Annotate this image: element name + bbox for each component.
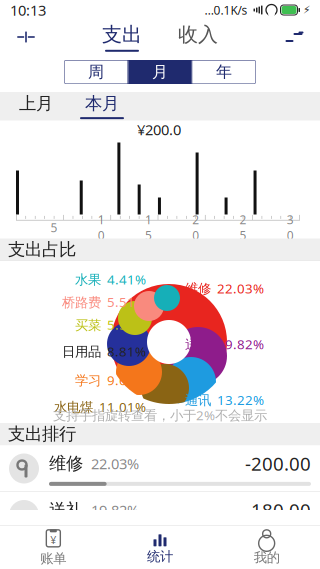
button[interactable]: 月 [128,60,191,84]
staticText: -200.00 [245,451,311,476]
staticText: -180.00 [245,498,311,522]
button[interactable]: 展开收起 [4,20,48,54]
button[interactable]: 我的 [213,526,320,569]
staticText: 维修 22.03% [185,279,264,297]
staticText: 账单 [40,550,66,567]
staticText: ¥200.0 [137,120,181,139]
staticText: 维修 [49,453,83,474]
staticText: 买菜 5.51% [75,316,146,333]
staticText: 25 [239,212,246,243]
button[interactable]: ¥ [0,526,107,569]
button[interactable]: 统计 [107,526,213,569]
staticText: 周 [88,62,104,82]
staticText: 20 [192,212,199,243]
staticText: 送礼 19.82% [185,335,264,353]
staticText: 本月 [85,93,119,114]
staticText: 年 [216,62,232,82]
staticText: 收入 [178,22,218,47]
button[interactable]: 收入 [173,22,223,52]
staticText: 日用品 8.81% [62,342,146,360]
staticText: ⚡︎ [303,4,310,16]
button[interactable]: 上月 [12,93,60,119]
staticText: 水果 4.41% [75,270,146,288]
button[interactable]: 年 [192,60,255,84]
staticText: 10 [98,212,105,243]
staticText: 15 [145,212,152,243]
staticText: 我的 [254,549,280,566]
staticText: 统计 [147,548,173,565]
staticText: 上月 [19,93,53,114]
staticText: 30 [287,212,294,243]
staticText: 支出占比 [8,239,76,260]
button[interactable]: 维修 [0,445,320,491]
staticText: 水电煤 11.01% [54,398,146,416]
staticText: ¥ [50,533,56,547]
staticText: 通讯 13.22% [185,391,264,409]
staticText: 支出 [102,22,142,47]
staticText: 学习 9.69% [75,371,146,389]
staticText: 桥路费 5.51% [62,293,146,311]
staticText: 支持手指旋转查看，小于2%不会显示 [53,406,267,424]
staticText: 送礼 [49,499,83,521]
button[interactable]: 支出 [97,22,147,52]
staticText: …0.1K/s [204,2,247,18]
staticText: 支出排行 [8,423,76,445]
staticText: 5 [51,219,58,235]
button[interactable]: 周 [64,60,127,84]
staticText: 19.82% [91,500,139,520]
button[interactable]: 趋势图 [272,20,316,54]
staticText: 22.03% [91,454,139,473]
staticText: 月 [152,62,168,82]
button[interactable]: 本月 [78,93,126,119]
staticText: 10:13 [10,0,46,20]
button[interactable]: 送礼 [0,492,320,538]
